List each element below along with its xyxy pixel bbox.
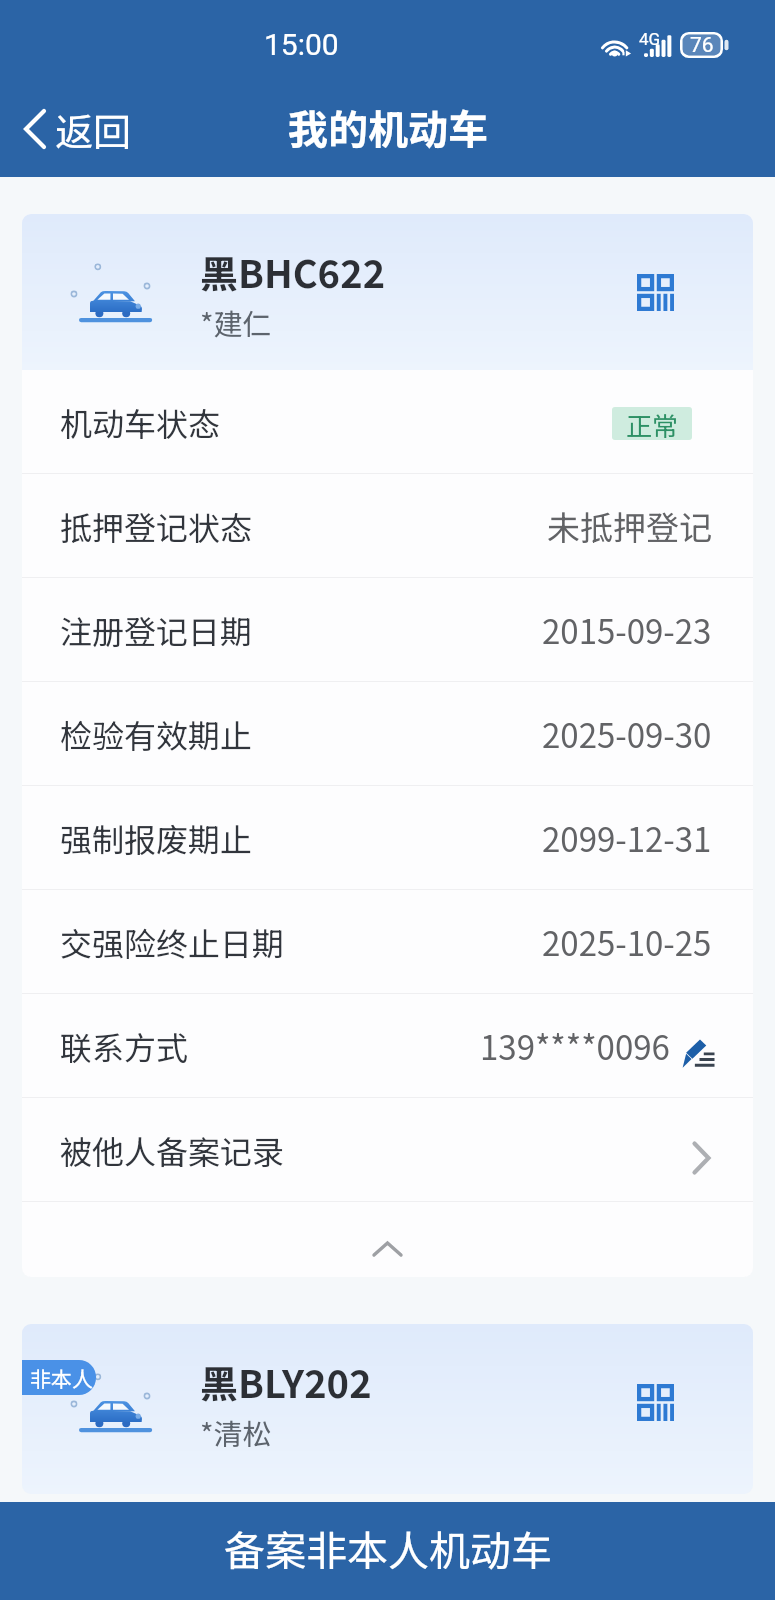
staticText: 返回 (55, 102, 132, 157)
staticText: *建仁 (200, 301, 272, 343)
staticText: 抵押登记状态 (60, 503, 253, 549)
button[interactable]: 备案非本人机动车 (0, 1502, 775, 1600)
staticText: 2025-10-25 (542, 918, 712, 966)
staticText: 139****0096 (480, 1022, 670, 1070)
button[interactable]: 检验有效期止 (22, 682, 753, 786)
staticText: 机动车状态 (60, 399, 221, 445)
button[interactable]: 联系方式 (22, 994, 753, 1098)
button[interactable]: 编辑联系方式 (682, 1039, 715, 1069)
button[interactable]: 抵押登记状态 (22, 474, 753, 578)
button[interactable]: 强制报废期止 (22, 786, 753, 890)
staticText: *清松 (200, 1411, 272, 1453)
button[interactable]: 返回 (0, 89, 148, 169)
staticText: 15:00 (264, 27, 339, 62)
button[interactable]: 扫码 (617, 1364, 694, 1441)
button[interactable]: 黑BLY202 (22, 1324, 753, 1494)
button[interactable]: 注册登记日期 (22, 578, 753, 682)
staticText: 被他人备案记录 (60, 1127, 285, 1173)
staticText: 正常 (626, 407, 679, 439)
staticText: 非本人 (30, 1363, 93, 1393)
button[interactable]: 收起 (22, 1202, 753, 1277)
button[interactable]: 机动车状态 (22, 370, 753, 474)
button[interactable]: 扫码 (617, 254, 694, 331)
staticText: 黑BLY202 (200, 1354, 372, 1409)
button[interactable]: 黑BHC622 (22, 214, 753, 370)
staticText: 2025-09-30 (542, 710, 712, 758)
staticText: 备案非本人机动车 (224, 1518, 552, 1577)
staticText: 未抵押登记 (547, 502, 712, 550)
staticText: 我的机动车 (288, 98, 488, 156)
button[interactable]: 交强险终止日期 (22, 890, 753, 994)
staticText: 2099-12-31 (542, 814, 712, 862)
staticText: 4G (639, 29, 661, 49)
staticText: 黑BHC622 (200, 244, 385, 299)
staticText: 注册登记日期 (60, 607, 253, 653)
staticText: 交强险终止日期 (60, 919, 285, 965)
button[interactable]: 被他人备案记录 (22, 1098, 753, 1202)
staticText: 强制报废期止 (60, 815, 253, 861)
staticText: 联系方式 (60, 1023, 189, 1069)
staticText: 2015-09-23 (542, 606, 712, 654)
staticText: 76 (690, 33, 714, 58)
staticText: 检验有效期止 (60, 711, 253, 757)
